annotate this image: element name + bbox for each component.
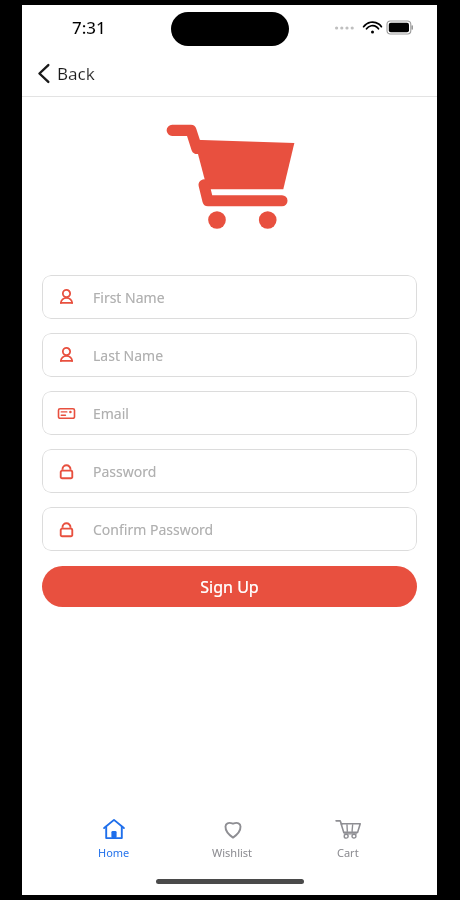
staticText: Email — [93, 404, 129, 423]
staticText: Password — [93, 462, 157, 481]
staticText: Back — [57, 62, 95, 85]
button[interactable]: Cart — [317, 813, 379, 864]
staticText: Last Name — [93, 346, 164, 365]
button[interactable]: Email — [42, 391, 417, 435]
button[interactable]: Confirm Password — [42, 507, 417, 551]
staticText: Confirm Password — [93, 520, 214, 539]
button[interactable]: Last Name — [42, 333, 417, 377]
button[interactable]: Wishlist — [194, 813, 271, 864]
button[interactable]: Back — [32, 58, 101, 89]
staticText: Home — [98, 845, 130, 860]
staticText: Cart — [337, 845, 359, 860]
staticText: Sign Up — [200, 576, 259, 598]
staticText: First Name — [93, 288, 165, 307]
button[interactable]: Sign Up — [42, 566, 417, 607]
button[interactable]: Home — [80, 813, 148, 864]
staticText: Wishlist — [212, 845, 253, 860]
button[interactable]: Password — [42, 449, 417, 493]
button[interactable]: First Name — [42, 275, 417, 319]
staticText: 7:31 — [72, 16, 106, 39]
